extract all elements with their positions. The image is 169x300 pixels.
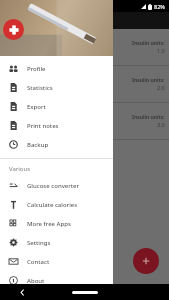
staticText: Profile bbox=[27, 65, 46, 73]
staticText: Insulin units: bbox=[132, 114, 165, 121]
button[interactable]: Show support bbox=[0, 290, 113, 300]
staticText: Insulin units: bbox=[132, 77, 165, 84]
staticText: 82% bbox=[154, 3, 165, 10]
staticText: About bbox=[27, 277, 45, 285]
button[interactable]: Contact bbox=[0, 252, 113, 271]
staticText: Settings bbox=[27, 239, 51, 247]
staticText: Calculate calories bbox=[27, 201, 78, 209]
button[interactable]: More free Apps bbox=[0, 214, 113, 233]
button[interactable]: Backup bbox=[0, 135, 113, 154]
button[interactable]: Add entry bbox=[133, 248, 159, 274]
button[interactable]: Home bbox=[72, 291, 98, 294]
staticText: Mon, 18.Nov.2019 06:28 bbox=[4, 106, 61, 113]
staticText: Glucose converter bbox=[27, 182, 80, 190]
staticText: Mon, 18.Nov.2019 06:27 bbox=[4, 69, 61, 76]
button[interactable]: Statistics bbox=[0, 78, 113, 97]
button[interactable]: Back bbox=[16, 286, 28, 298]
staticText: Contact bbox=[27, 258, 50, 266]
button[interactable]: About bbox=[0, 271, 113, 290]
staticText: Statistics bbox=[27, 84, 53, 92]
staticText: Export bbox=[27, 103, 46, 111]
button[interactable]: Print notes bbox=[0, 116, 113, 135]
staticText: 2.0 bbox=[157, 84, 165, 91]
button[interactable]: Settings bbox=[0, 233, 113, 252]
staticText: Print notes bbox=[27, 122, 59, 130]
staticText: More free Apps bbox=[27, 220, 71, 228]
button[interactable]: App icon bbox=[3, 19, 24, 40]
staticText: 3.0 bbox=[157, 121, 165, 128]
staticText: Various bbox=[9, 165, 31, 173]
staticText: Insulin units: bbox=[132, 40, 165, 47]
button[interactable]: Glucose converter bbox=[0, 176, 113, 195]
button[interactable]: Profile bbox=[0, 59, 113, 78]
staticText: Backup bbox=[27, 141, 49, 149]
button[interactable]: Calculate calories bbox=[0, 195, 113, 214]
staticText: Mon, 18.Nov.2019 06:27 bbox=[4, 32, 61, 39]
staticText: 1.0 bbox=[157, 47, 165, 54]
button[interactable]: Export bbox=[0, 97, 113, 116]
staticText: SELECT BY DATE bbox=[6, 17, 61, 25]
